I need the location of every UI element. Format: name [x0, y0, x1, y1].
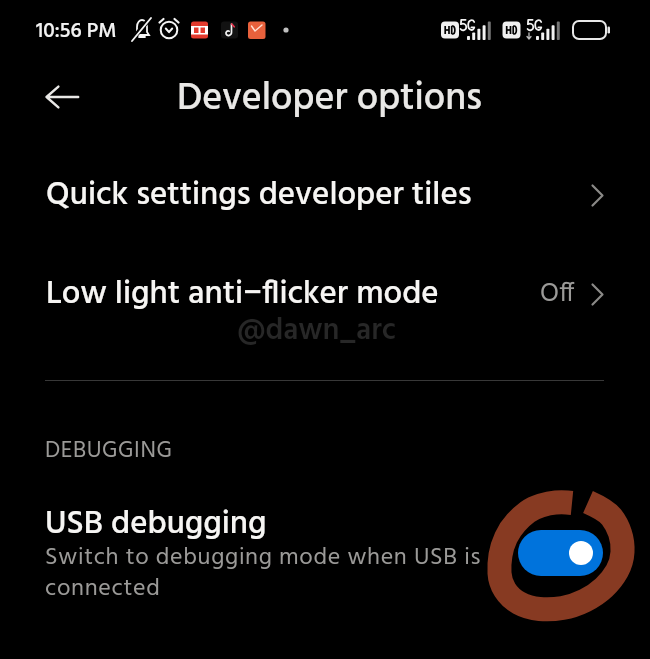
staticText: Developer options	[177, 69, 483, 130]
staticText: Off	[540, 273, 575, 316]
staticText: @dawn_arc	[237, 307, 396, 355]
staticText: 10:56 PM	[36, 15, 117, 49]
button[interactable]: Quick settings developer tiles	[0, 161, 650, 229]
staticText: Switch to debugging mode when USB is con…	[45, 539, 481, 608]
button[interactable]: USB debugging	[0, 482, 650, 622]
staticText: Low light anti−flicker mode	[46, 268, 439, 321]
button[interactable]: Low light anti−flicker mode	[0, 260, 650, 328]
staticText: USB debugging	[45, 498, 267, 551]
staticText: DEBUGGING	[45, 433, 173, 470]
staticText: Quick settings developer tiles	[46, 169, 472, 222]
button[interactable]: Navigate up	[38, 73, 86, 121]
button[interactable]: USB debugging, on	[518, 530, 603, 576]
